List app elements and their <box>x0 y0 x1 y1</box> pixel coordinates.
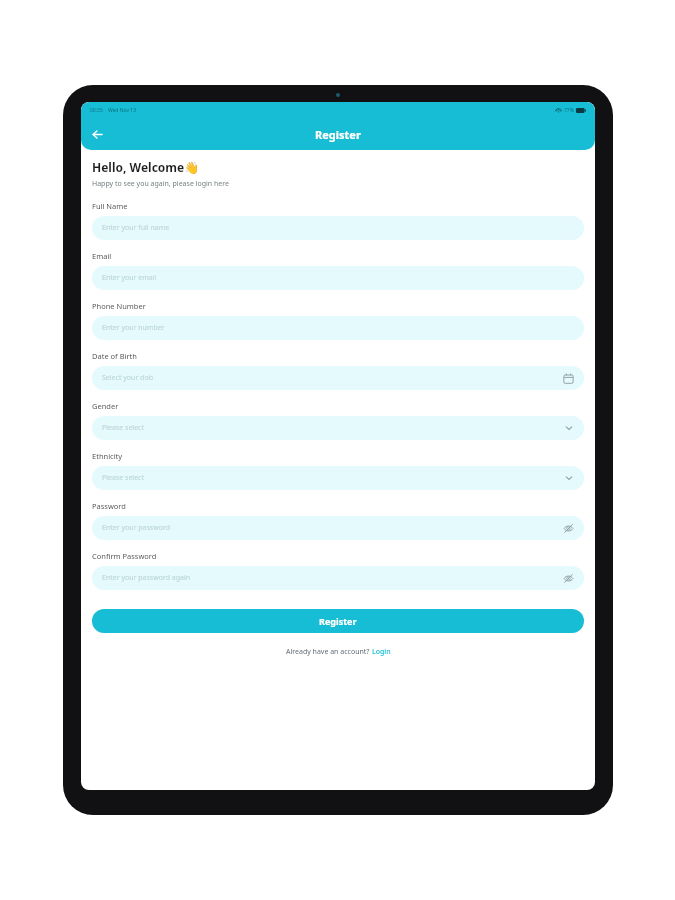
staticText: Enter your full name <box>102 223 574 233</box>
staticText: Enter your password again <box>102 573 563 583</box>
button[interactable]: Confirm Password <box>92 566 584 590</box>
button[interactable]: Phone Number <box>92 316 584 340</box>
button[interactable]: Date of Birth <box>92 366 584 390</box>
button[interactable]: Password <box>92 516 584 540</box>
button[interactable]: Ethnicity <box>92 466 584 490</box>
staticText: Enter your email <box>102 273 574 283</box>
button[interactable]: Gender <box>92 416 584 440</box>
staticText: Login <box>372 647 391 657</box>
staticText: 77% <box>564 107 574 114</box>
staticText: Happy to see you again, please login her… <box>92 179 229 189</box>
staticText: Register <box>319 615 357 627</box>
button[interactable]: Register <box>92 609 584 633</box>
button[interactable]: Email <box>92 266 584 290</box>
staticText: Phone Number <box>92 301 146 311</box>
button[interactable]: Back <box>85 122 109 146</box>
staticText: Full Name <box>92 201 128 211</box>
button[interactable]: Login <box>372 647 391 657</box>
staticText: Confirm Password <box>92 551 157 561</box>
staticText: Select your dob <box>102 373 563 383</box>
staticText: Please select <box>102 473 564 483</box>
staticText: Register <box>315 127 361 142</box>
button[interactable]: Full Name <box>92 216 584 240</box>
staticText: Email <box>92 251 112 261</box>
staticText: Hello, Welcome👋 <box>92 159 200 175</box>
staticText: Enter your password <box>102 523 563 533</box>
staticText: Wed Nov 13 <box>108 107 137 114</box>
staticText: 00:35 <box>90 107 103 114</box>
staticText: Already have an account? <box>286 647 372 657</box>
staticText: Gender <box>92 401 119 411</box>
staticText: Date of Birth <box>92 351 137 361</box>
staticText: Password <box>92 501 126 511</box>
staticText: Please select <box>102 423 564 433</box>
staticText: Enter your number <box>102 323 574 333</box>
staticText: Ethnicity <box>92 451 123 461</box>
